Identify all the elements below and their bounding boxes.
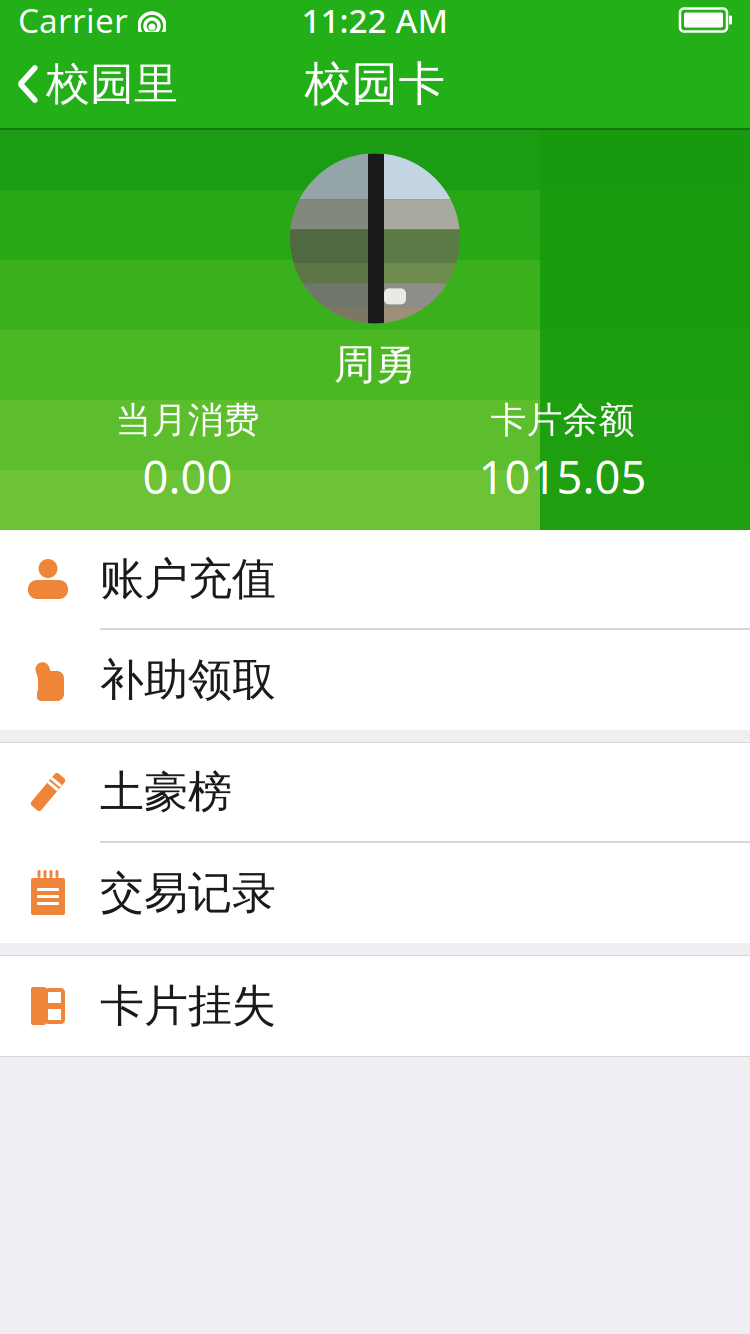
button[interactable]: 交易记录 (0, 843, 750, 943)
button[interactable]: 补助领取 (0, 630, 750, 730)
staticText: 0.00 (142, 446, 232, 507)
staticText: 交易记录 (100, 866, 276, 920)
staticText: 土豪榜 (100, 765, 232, 819)
staticText: 校园卡 (304, 55, 445, 113)
staticText: 账户充值 (100, 552, 276, 606)
button[interactable]: 卡片挂失 (0, 956, 750, 1056)
staticText: 校园里 (46, 57, 178, 111)
staticText: 卡片余额 (490, 398, 634, 442)
staticText: 卡片挂失 (100, 979, 276, 1033)
staticText: Carrier (18, 0, 128, 42)
staticText: 当月消费 (115, 398, 259, 442)
staticText: 1015.05 (478, 446, 646, 507)
button[interactable]: 校园里 (0, 40, 192, 128)
staticText: 11:22 AM (301, 0, 448, 42)
button[interactable]: 账户充值 (0, 530, 750, 630)
staticText: 周勇 (334, 339, 416, 390)
button[interactable]: 土豪榜 (0, 743, 750, 843)
staticText: 补助领取 (100, 653, 276, 707)
